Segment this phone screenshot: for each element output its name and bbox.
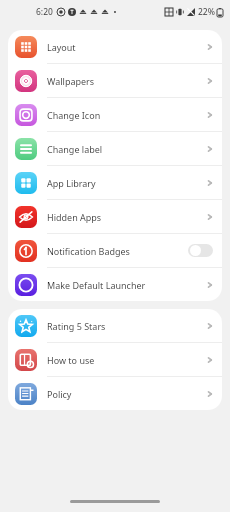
staticText: 22% <box>198 6 215 18</box>
staticText: Change Icon <box>47 109 207 121</box>
button[interactable]: Change label <box>8 132 222 166</box>
staticText: 6:20 <box>36 6 53 18</box>
button[interactable]: Rating 5 Stars <box>8 309 222 343</box>
staticText: Wallpapers <box>47 75 207 87</box>
button[interactable]: Notification badges toggle <box>188 244 213 257</box>
staticText: Notification Badges <box>47 245 188 257</box>
button[interactable]: Wallpapers <box>8 64 222 98</box>
button[interactable]: Policy <box>8 377 222 410</box>
staticText: App Library <box>47 177 207 189</box>
staticText: Policy <box>47 388 207 400</box>
button[interactable]: Notification Badges <box>8 234 222 268</box>
staticText: Layout <box>47 41 207 53</box>
staticText: Change label <box>47 143 207 155</box>
button[interactable]: App Library <box>8 166 222 200</box>
staticText: Rating 5 Stars <box>47 320 207 332</box>
button[interactable]: Hidden Apps <box>8 200 222 234</box>
button[interactable]: Layout <box>8 30 222 64</box>
button[interactable]: Make Default Launcher <box>8 268 222 301</box>
button[interactable]: Change Icon <box>8 98 222 132</box>
button[interactable]: How to use <box>8 343 222 377</box>
staticText: Hidden Apps <box>47 211 207 223</box>
staticText: How to use <box>47 354 207 366</box>
staticText: Make Default Launcher <box>47 279 207 291</box>
